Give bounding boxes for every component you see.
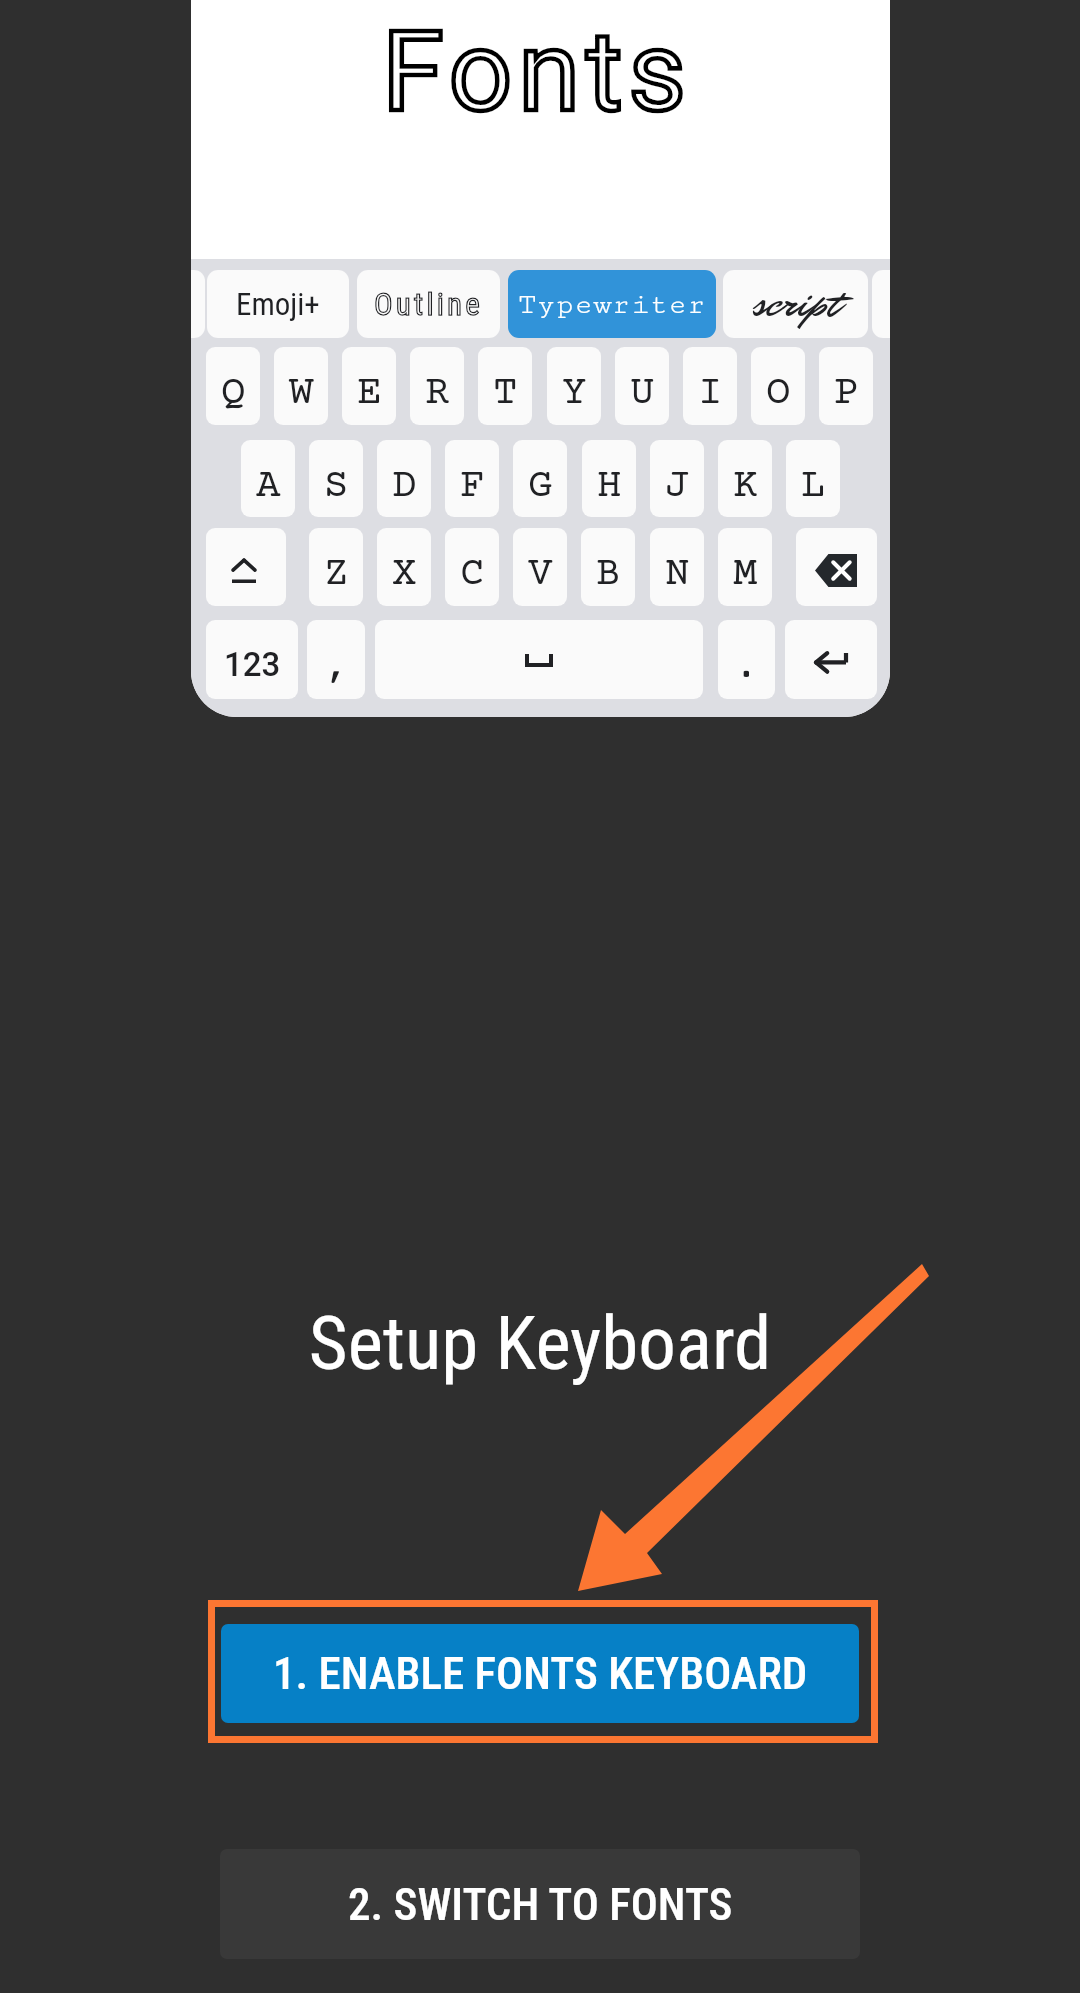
staticText: P [834, 371, 859, 417]
staticText: W [289, 371, 314, 417]
staticText: C [460, 552, 485, 598]
staticText: Outline [374, 286, 483, 322]
staticText: T [493, 371, 518, 417]
staticText: D [392, 464, 417, 510]
staticText: L [801, 464, 826, 510]
staticText: A [256, 464, 281, 510]
other: Backspace [796, 528, 877, 606]
button[interactable]: 1. ENABLE FONTS KEYBOARD [221, 1624, 859, 1723]
button[interactable]: 2. SWITCH TO FONTS [220, 1849, 860, 1959]
staticText: O [766, 371, 791, 417]
staticText: . [734, 645, 759, 691]
staticText: R [425, 371, 450, 417]
other: Space [375, 620, 703, 699]
staticText: J [665, 464, 690, 510]
staticText: 2. SWITCH TO FONTS [348, 1878, 733, 1931]
staticText: K [733, 464, 758, 510]
staticText: B [596, 552, 621, 598]
staticText: N [665, 552, 690, 598]
staticText: V [528, 552, 553, 598]
staticText: I [698, 371, 723, 417]
staticText: Setup Keyboard [0, 1299, 1080, 1387]
other: Shift [206, 528, 286, 606]
staticText: U [630, 371, 655, 417]
staticText: Fonts [382, 6, 692, 137]
staticText: S [324, 464, 349, 510]
staticText: script [752, 276, 840, 332]
staticText: , [324, 645, 349, 691]
staticText: Emoji+ [236, 286, 320, 322]
staticText: E [357, 371, 382, 417]
staticText: 123 [224, 645, 281, 684]
staticText: G [528, 464, 553, 510]
staticText: Typewriter [518, 287, 706, 321]
staticText: M [733, 552, 758, 598]
staticText: X [392, 552, 417, 598]
staticText: 1. ENABLE FONTS KEYBOARD [273, 1647, 808, 1700]
staticText: Z [324, 552, 349, 598]
staticText: H [597, 464, 622, 510]
other: Fonts keyboard preview [191, 0, 890, 717]
staticText: F [460, 464, 485, 510]
other: Enter [785, 620, 877, 699]
staticText: Q [221, 371, 246, 417]
staticText: Y [562, 371, 587, 417]
